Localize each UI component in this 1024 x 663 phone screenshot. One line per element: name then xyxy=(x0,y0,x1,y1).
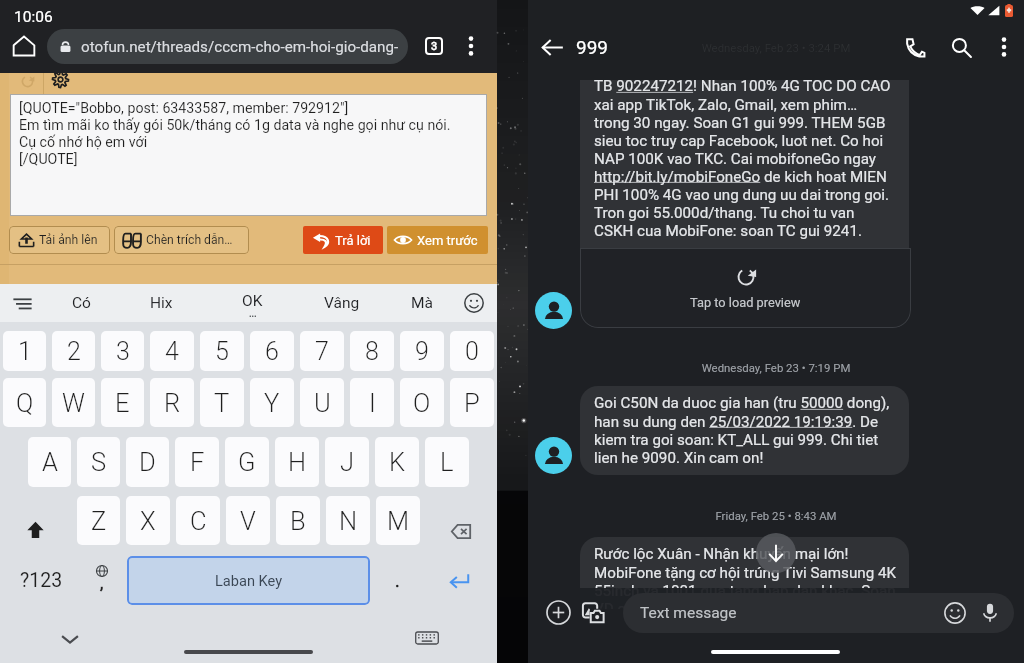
button[interactable]: 9 xyxy=(400,331,444,371)
button[interactable]: Có xyxy=(51,284,111,322)
button[interactable]: K xyxy=(375,437,419,487)
button[interactable]: [QUOTE="Bobbo, post: 63433587, member: 7… xyxy=(10,94,487,216)
button[interactable]: 4 xyxy=(150,331,194,371)
staticText: Vâng xyxy=(324,294,360,312)
staticText: 5 xyxy=(215,337,229,366)
button[interactable]: ?123 xyxy=(5,556,77,605)
staticText: 10:06 xyxy=(14,8,53,26)
button[interactable]: Send photo xyxy=(573,592,613,632)
button[interactable]: 1 xyxy=(3,331,46,371)
button[interactable]: Tải ảnh lên xyxy=(9,226,110,254)
button[interactable]: Rước lộc Xuân - Nhận khuyến mại lớn! Mob… xyxy=(580,537,909,609)
button[interactable]: More options xyxy=(453,28,489,64)
button[interactable]: L xyxy=(425,437,469,487)
button[interactable]: U xyxy=(300,378,344,427)
button[interactable]: Switch keyboard xyxy=(413,624,441,652)
button[interactable]: . xyxy=(374,556,420,605)
button[interactable]: Scroll to bottom xyxy=(756,533,796,573)
button[interactable]: Enter xyxy=(432,556,486,605)
button[interactable]: C xyxy=(176,496,220,545)
button[interactable]: M xyxy=(376,496,420,545)
staticText: 8 xyxy=(365,337,379,366)
button[interactable]: R xyxy=(150,378,194,427)
button[interactable]: Home xyxy=(6,28,42,64)
staticText: otofun.net/threads/cccm-cho-em-hoi-gio-d… xyxy=(81,38,408,56)
button[interactable]: More options xyxy=(984,27,1024,67)
button[interactable]: Emoji xyxy=(461,290,487,316)
staticText: Mà xyxy=(411,294,433,312)
button[interactable]: Xem trước xyxy=(387,226,488,254)
button[interactable]: T xyxy=(200,378,244,427)
button[interactable]: B xyxy=(276,496,320,545)
button[interactable]: Search xyxy=(938,24,984,70)
button[interactable]: Goi C50N da duoc gia han (tru 50000 dong… xyxy=(580,386,909,475)
button[interactable]: J xyxy=(325,437,369,487)
staticText: Em tìm mãi ko thấy gói 50k/tháng có 1g d… xyxy=(19,117,451,134)
button[interactable]: X xyxy=(126,496,170,545)
button[interactable]: 5 xyxy=(200,331,244,371)
button[interactable]: D xyxy=(126,437,169,487)
staticText: B xyxy=(290,506,306,536)
button[interactable]: N xyxy=(326,496,370,545)
staticText: 1 xyxy=(18,337,32,366)
staticText: X xyxy=(140,506,156,536)
staticText: R xyxy=(164,388,181,418)
button[interactable]: Laban Key xyxy=(127,556,370,605)
staticText: ••• xyxy=(249,312,257,321)
staticText: Laban Key xyxy=(215,572,283,589)
staticText: Tải ảnh lên xyxy=(39,233,98,247)
button[interactable]: Text message xyxy=(623,593,1014,633)
staticText: I xyxy=(369,388,376,418)
button[interactable]: Comma and language xyxy=(78,556,126,605)
button[interactable]: Mà xyxy=(392,284,452,322)
button[interactable]: TB 902247212! Nhan 100% 4G TOC DO CAO xa… xyxy=(580,80,909,248)
button[interactable]: 3 xyxy=(101,331,144,371)
staticText: L xyxy=(440,447,454,477)
button[interactable]: Attach xyxy=(537,591,579,633)
button[interactable]: A xyxy=(28,437,71,487)
button[interactable]: Contact avatar xyxy=(535,437,572,474)
button[interactable]: S xyxy=(77,437,120,487)
button[interactable]: I xyxy=(350,378,394,427)
button[interactable]: O xyxy=(400,378,444,427)
button[interactable]: Y xyxy=(250,378,294,427)
button[interactable]: Backspace xyxy=(439,509,483,553)
staticText: D xyxy=(139,447,156,477)
staticText: E xyxy=(115,388,130,418)
button[interactable]: OK xyxy=(232,284,273,322)
staticText: O xyxy=(413,388,431,418)
button[interactable]: Tap to load preview xyxy=(580,248,911,328)
button[interactable]: V xyxy=(226,496,270,545)
button[interactable]: Suggestions menu xyxy=(8,289,36,317)
staticText: Rước lộc Xuân - Nhận khuyến mại lớn! Mob… xyxy=(594,545,897,609)
button[interactable]: Back xyxy=(528,23,576,71)
button[interactable]: Contact avatar xyxy=(535,292,572,329)
button[interactable]: 6 xyxy=(250,331,294,371)
button[interactable]: W xyxy=(52,378,95,427)
button[interactable]: H xyxy=(275,437,319,487)
button[interactable]: 7 xyxy=(300,331,344,371)
button[interactable]: Z xyxy=(77,496,120,545)
button[interactable]: Vâng xyxy=(312,284,372,322)
button[interactable]: Call xyxy=(892,24,938,70)
button[interactable]: 0 xyxy=(450,331,494,371)
button[interactable]: Hide keyboard xyxy=(55,624,85,654)
button[interactable]: Trả lời xyxy=(303,226,383,254)
button[interactable]: Q xyxy=(3,378,46,427)
button[interactable]: P xyxy=(450,378,494,427)
staticText: 999 xyxy=(576,36,609,58)
button[interactable]: Hix xyxy=(131,284,191,322)
staticText: Có xyxy=(72,294,91,312)
button[interactable]: G xyxy=(225,437,269,487)
button[interactable]: E xyxy=(101,378,144,427)
staticText: Z xyxy=(91,506,107,536)
button[interactable]: F xyxy=(175,437,219,487)
button[interactable]: Shift xyxy=(14,509,56,551)
button[interactable]: 2 xyxy=(52,331,95,371)
button[interactable]: Tabs xyxy=(416,28,452,64)
button[interactable]: 8 xyxy=(350,331,394,371)
staticText: Goi C50N da duoc gia han (tru 50000 dong… xyxy=(594,394,897,466)
button[interactable]: otofun.net/threads/cccm-cho-em-hoi-gio-d… xyxy=(47,29,408,64)
staticText: , xyxy=(100,573,104,593)
button[interactable]: Chèn trích dẫn… xyxy=(114,226,249,254)
